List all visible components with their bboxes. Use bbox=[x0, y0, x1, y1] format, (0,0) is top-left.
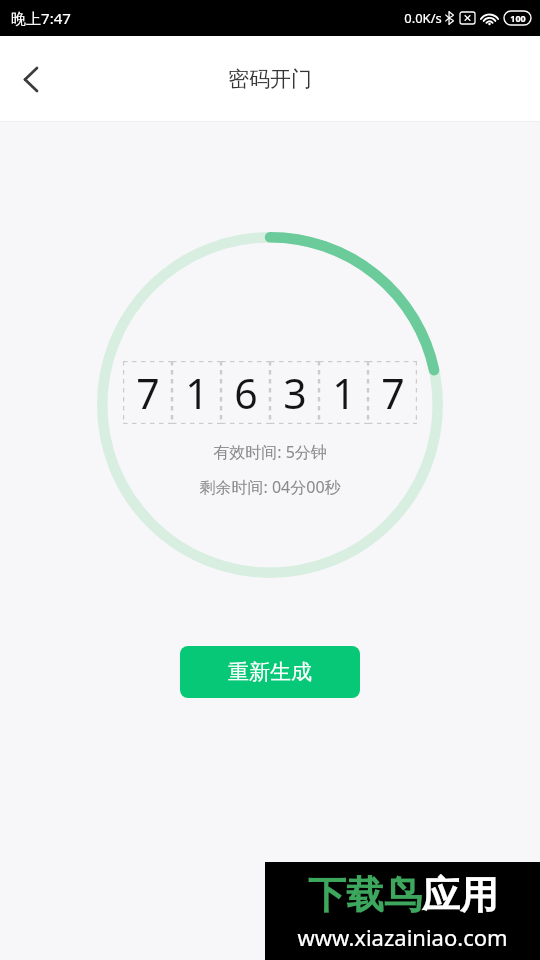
staticText: 下载鸟 bbox=[308, 871, 422, 919]
staticText: 密码开门 bbox=[228, 66, 312, 92]
staticText: 3 bbox=[283, 365, 307, 421]
staticText: 有效时间: 5分钟 bbox=[213, 441, 327, 463]
staticText: www.xiazainiao.com bbox=[297, 922, 508, 952]
staticText: 1 bbox=[185, 365, 209, 421]
staticText: 7 bbox=[381, 365, 405, 421]
staticText: 应用 bbox=[422, 871, 498, 919]
staticText: 1 bbox=[332, 365, 356, 421]
staticText: 晚上7:47 bbox=[11, 8, 71, 28]
staticText: 重新生成 bbox=[228, 659, 312, 685]
staticText: 100 bbox=[510, 12, 526, 24]
button[interactable]: 重新生成 bbox=[180, 646, 360, 698]
staticText: 0.0K/s bbox=[404, 9, 442, 27]
staticText: 7 bbox=[136, 365, 160, 421]
staticText: 6 bbox=[234, 365, 258, 421]
button[interactable]: Back bbox=[0, 44, 62, 114]
staticText: 剩余时间: 04分00秒 bbox=[199, 476, 341, 498]
